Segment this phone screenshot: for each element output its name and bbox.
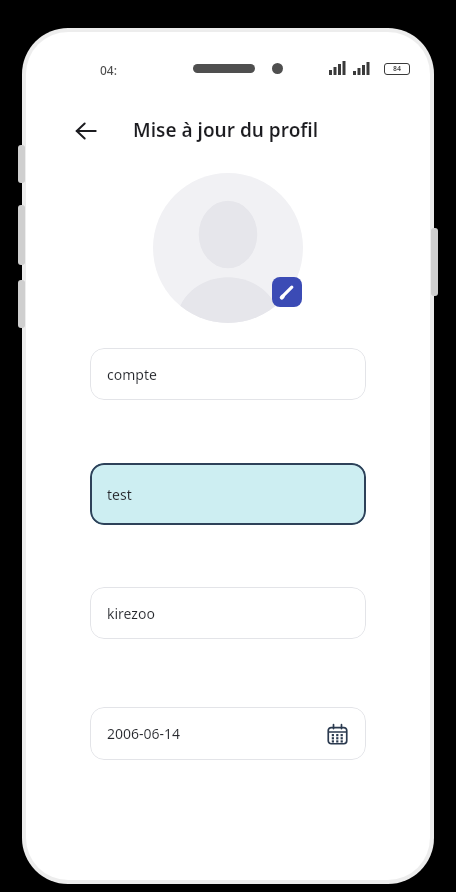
staticText: 84 [393, 64, 402, 74]
button[interactable]: test [90, 463, 366, 525]
button[interactable]: compte [90, 348, 366, 400]
button[interactable]: Edit photo [272, 277, 302, 307]
staticText: Mise à jour du profil [133, 117, 319, 143]
staticText: 2006-06-14 [107, 724, 181, 743]
button[interactable]: kirezoo [90, 587, 366, 639]
other: Pick date [324, 721, 350, 747]
button[interactable]: 2006-06-14 [90, 707, 366, 760]
staticText: test [107, 485, 132, 504]
staticText: compte [107, 365, 157, 384]
staticText: 04: [100, 62, 117, 78]
staticText: kirezoo [107, 604, 155, 623]
button[interactable]: Back [66, 111, 106, 151]
button[interactable]: Profile photo [153, 173, 303, 323]
